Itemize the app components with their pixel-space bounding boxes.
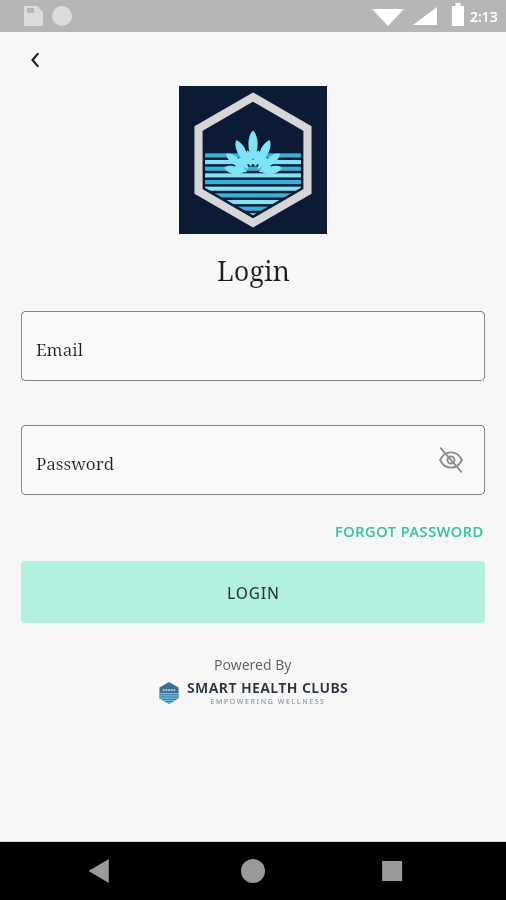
button[interactable]: Back [14, 38, 58, 82]
button[interactable]: LOGIN [21, 561, 485, 623]
button[interactable]: Email [21, 311, 485, 381]
staticText: Email [36, 338, 83, 361]
staticText: Login [217, 252, 290, 289]
staticText: FORGOT PASSWORD [335, 521, 484, 541]
staticText: SMART HEALTH CLUBS [187, 678, 349, 697]
button[interactable]: FORGOT PASSWORD [333, 515, 486, 547]
staticText: LOGIN [227, 582, 280, 603]
button[interactable]: Password [21, 425, 485, 495]
staticText: 2:13 [470, 7, 498, 26]
staticText: EMPOWERING WELLNESS [210, 697, 326, 707]
staticText: Password [36, 452, 115, 475]
button[interactable]: Toggle password visibility [431, 440, 471, 480]
staticText: Powered By [214, 655, 292, 674]
